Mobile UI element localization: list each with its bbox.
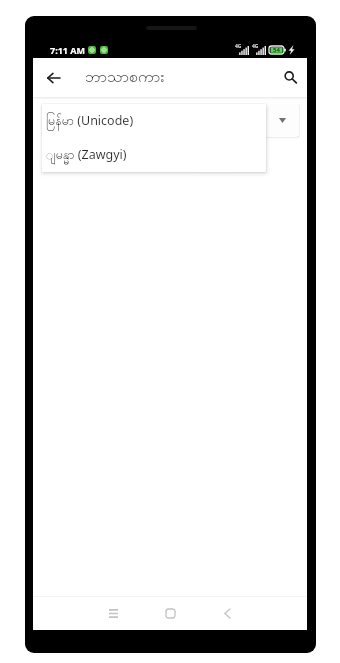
staticText: 7:11 AM: [50, 44, 86, 56]
staticText: ဘာသာစကား: [85, 66, 165, 90]
staticText: 4G: [235, 43, 242, 50]
staticText: 54: [273, 46, 280, 54]
button[interactable]: Recent apps: [99, 597, 128, 630]
button[interactable]: Home: [156, 597, 185, 630]
button[interactable]: Back: [213, 597, 242, 630]
button[interactable]: ျမန္မာ (Zawgyi): [42, 138, 266, 172]
button[interactable]: Navigate up: [38, 62, 69, 93]
staticText: မြန်မာ (Unicode): [46, 112, 134, 131]
staticText: 4G: [252, 43, 259, 50]
button[interactable]: Font selector: [42, 104, 299, 137]
staticText: ျမန္မာ (Zawgyi): [46, 146, 127, 165]
button[interactable]: Search: [275, 62, 306, 93]
button[interactable]: မြန်မာ (Unicode): [42, 104, 266, 138]
